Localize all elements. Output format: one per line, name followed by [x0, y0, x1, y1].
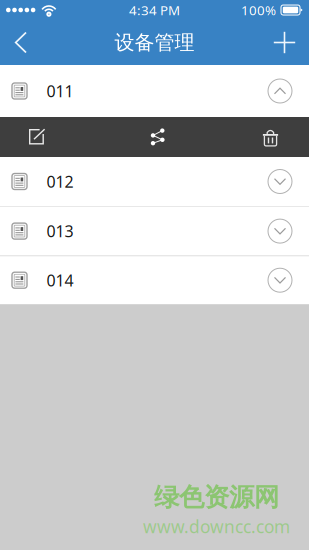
button[interactable]: Back: [0, 20, 37, 65]
staticText: 014: [46, 270, 73, 291]
staticText: 设备管理: [114, 30, 194, 55]
staticText: 012: [46, 171, 73, 192]
button[interactable]: Share: [74, 117, 241, 157]
staticText: 013: [46, 220, 73, 242]
button[interactable]: Delete: [241, 117, 309, 157]
staticText: 绿色资源网: [154, 482, 279, 513]
button[interactable]: Add: [263, 20, 309, 65]
staticText: 100%: [241, 1, 276, 19]
button[interactable]: 011: [0, 65, 309, 117]
staticText: www.downcc.com: [143, 515, 290, 538]
button[interactable]: 012: [0, 157, 309, 206]
button[interactable]: 014: [0, 256, 309, 304]
staticText: 011: [46, 80, 73, 102]
button[interactable]: Edit: [0, 117, 74, 157]
staticText: 4:34 PM: [129, 1, 180, 19]
button[interactable]: 013: [0, 207, 309, 256]
